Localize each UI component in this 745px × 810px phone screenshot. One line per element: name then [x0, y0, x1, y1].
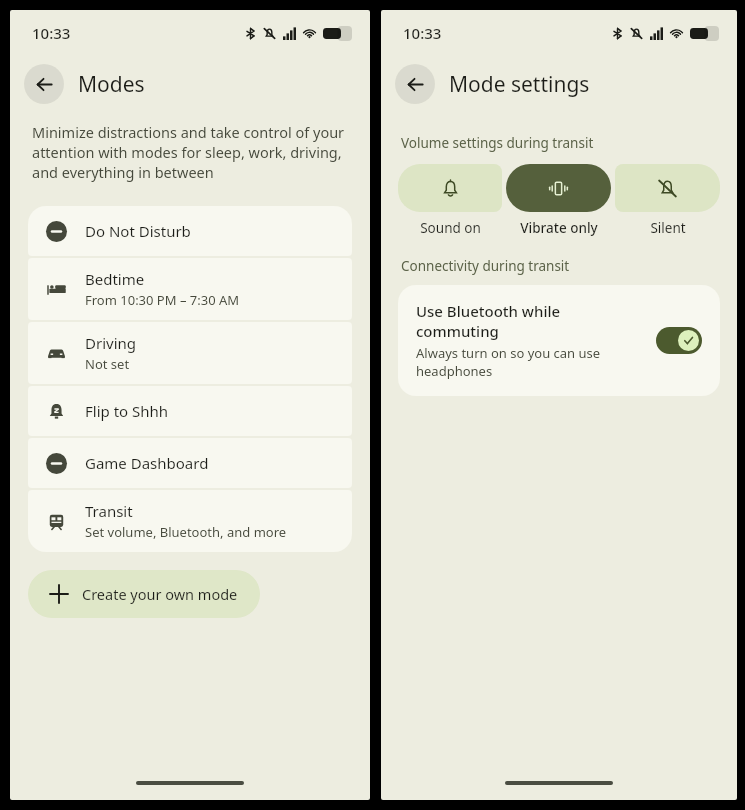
button[interactable]: Driving — [28, 322, 352, 384]
button[interactable]: Create your own mode — [28, 570, 260, 618]
staticText: Set volume, Bluetooth, and more — [85, 523, 287, 541]
staticText: Sound on — [420, 219, 481, 237]
button[interactable]: Sound on — [398, 164, 502, 237]
staticText: Silent — [650, 219, 686, 237]
staticText: Mode settings — [449, 70, 590, 99]
button[interactable]: Use Bluetooth while commuting toggle — [656, 327, 702, 354]
staticText: Volume settings during transit — [401, 134, 594, 152]
staticText: Not set — [85, 355, 130, 373]
button[interactable]: Back — [395, 64, 435, 104]
staticText: Connectivity during transit — [401, 257, 570, 275]
staticText: Modes — [78, 70, 145, 99]
button[interactable]: Game Dashboard — [28, 438, 352, 488]
button[interactable]: Bedtime — [28, 258, 352, 320]
staticText: Do Not Disturb — [85, 221, 191, 241]
button[interactable]: Back — [24, 64, 64, 104]
staticText: Use Bluetooth while commuting — [416, 301, 644, 341]
staticText: From 10:30 PM – 7:30 AM — [85, 291, 240, 309]
staticText: Vibrate only — [520, 219, 598, 237]
staticText: Driving — [85, 333, 137, 353]
staticText: Transit — [85, 501, 133, 521]
staticText: Create your own mode — [82, 584, 238, 604]
staticText: 10:33 — [403, 23, 442, 43]
staticText: Flip to Shhh — [85, 401, 169, 421]
staticText: Game Dashboard — [85, 453, 209, 473]
button[interactable]: Transit — [28, 490, 352, 552]
staticText: 10:33 — [32, 23, 71, 43]
staticText: Minimize distractions and take control o… — [32, 122, 348, 182]
button[interactable]: Silent — [615, 164, 720, 237]
button[interactable]: Do Not Disturb — [28, 206, 352, 256]
button[interactable]: Vibrate only — [506, 164, 611, 237]
button[interactable]: Use Bluetooth while commuting — [398, 285, 720, 396]
staticText: Always turn on so you can use headphones — [416, 344, 644, 380]
staticText: Bedtime — [85, 269, 145, 289]
button[interactable]: Flip to Shhh — [28, 386, 352, 436]
